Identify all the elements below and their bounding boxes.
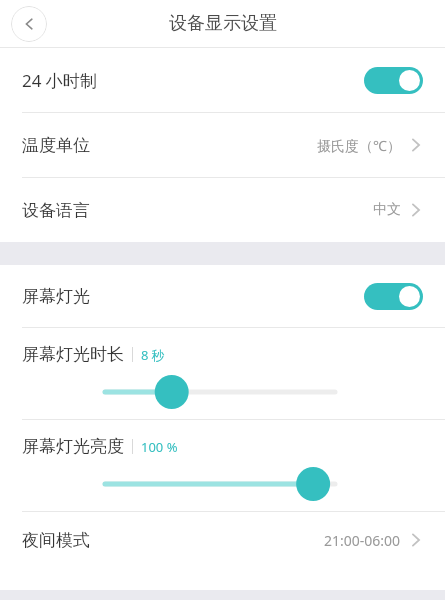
staticText: 屏幕灯光亮度: [22, 436, 124, 457]
staticText: 21:00-06:00: [324, 531, 401, 550]
button[interactable]: 24 小时制: [0, 48, 445, 112]
staticText: 温度单位: [22, 135, 90, 156]
button[interactable]: 屏幕灯光亮度: [0, 420, 445, 511]
staticText: 设备语言: [22, 200, 90, 221]
staticText: 设备显示设置: [169, 12, 277, 35]
staticText: 24 小时制: [22, 69, 97, 92]
button[interactable]: 设备语言: [0, 178, 445, 242]
button[interactable]: Back: [11, 6, 47, 42]
staticText: 屏幕灯光: [22, 286, 90, 307]
staticText: 屏幕灯光时长: [22, 344, 124, 365]
staticText: 中文: [373, 201, 401, 219]
staticText: 摄氏度（℃）: [317, 136, 401, 155]
staticText: 夜间模式: [22, 530, 90, 551]
button[interactable]: 夜间模式: [0, 512, 445, 568]
button[interactable]: 屏幕灯光时长: [0, 328, 445, 419]
button[interactable]: 温度单位: [0, 113, 445, 177]
staticText: 100 %: [141, 438, 178, 456]
staticText: 8 秒: [141, 346, 165, 364]
button[interactable]: 屏幕灯光: [0, 265, 445, 327]
